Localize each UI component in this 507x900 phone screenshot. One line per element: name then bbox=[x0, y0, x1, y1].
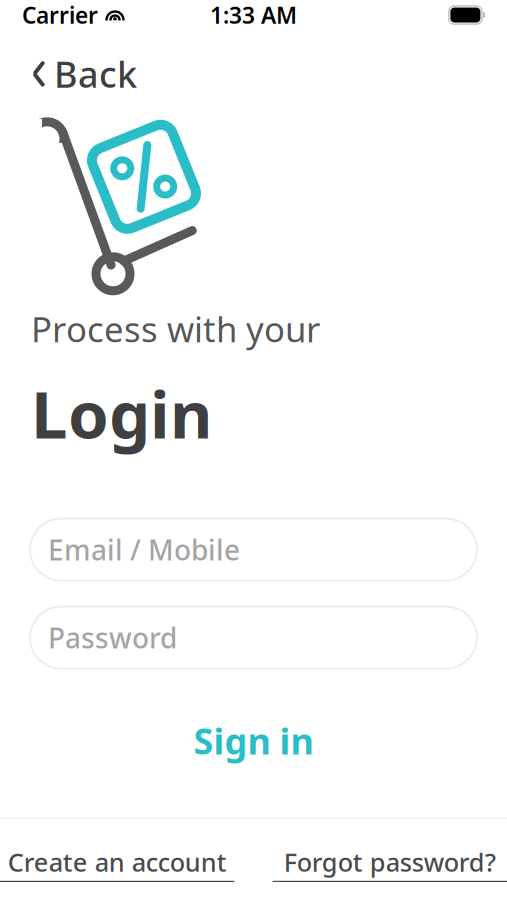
staticText: Email / Mobile bbox=[48, 531, 240, 568]
button[interactable]: Forgot password? bbox=[272, 841, 507, 886]
staticText: 1:33 AM bbox=[210, 0, 297, 30]
staticText: Carrier bbox=[22, 0, 98, 30]
button[interactable]: Sign in bbox=[159, 705, 347, 776]
button[interactable]: Create an account bbox=[0, 841, 234, 886]
staticText: Back bbox=[54, 50, 137, 98]
staticText: Create an account bbox=[8, 845, 227, 879]
staticText: Login bbox=[31, 370, 212, 457]
button[interactable]: Back bbox=[26, 42, 143, 106]
staticText: Sign in bbox=[193, 717, 313, 764]
staticText: Forgot password? bbox=[284, 845, 496, 879]
staticText: Process with your bbox=[31, 306, 320, 352]
staticText: Password bbox=[48, 619, 177, 656]
